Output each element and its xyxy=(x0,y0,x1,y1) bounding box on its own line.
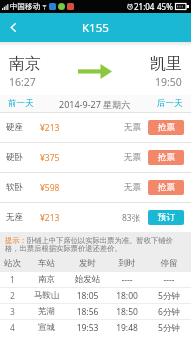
staticText: ¥375 xyxy=(40,152,60,164)
staticText: 1 xyxy=(0,274,25,286)
staticText: ---- xyxy=(147,274,191,286)
staticText: 芜湖 xyxy=(25,306,68,317)
staticText: 凯里 xyxy=(150,54,182,74)
staticText: 到时 xyxy=(107,258,147,269)
staticText: 抢票 xyxy=(158,182,175,193)
staticText: 3 xyxy=(0,306,25,318)
staticText: 车站 xyxy=(25,258,68,269)
staticText: 停留 xyxy=(147,258,191,269)
staticText: ¥598 xyxy=(40,182,60,194)
staticText: 无票 xyxy=(124,152,141,163)
staticText: 16:27 xyxy=(9,75,36,89)
button[interactable]: 无座 xyxy=(0,203,191,232)
staticText: 宣城 xyxy=(25,322,68,333)
button[interactable]: 3 xyxy=(0,304,191,319)
staticText: 后一天 xyxy=(157,98,183,109)
button[interactable]: 4 xyxy=(0,320,191,335)
staticText: 无票 xyxy=(124,182,141,193)
button[interactable]: 抢票 xyxy=(148,180,184,195)
staticText: 21:04 xyxy=(134,1,155,12)
staticText: 19:48 xyxy=(107,322,147,334)
button[interactable]: 软卧 xyxy=(0,173,191,202)
staticText: 抢票 xyxy=(158,152,175,163)
staticText: 马鞍山 xyxy=(25,290,68,301)
staticText: 无座 xyxy=(6,212,40,223)
button[interactable]: 预订 xyxy=(148,210,184,225)
staticText: 18:05 xyxy=(68,290,107,302)
staticText: 始发站 xyxy=(68,274,107,285)
staticText: 2014-9-27 星期六 xyxy=(59,98,131,110)
staticText: 无票 xyxy=(124,122,141,133)
staticText: 18:50 xyxy=(107,306,147,318)
button[interactable]: 硬座 xyxy=(0,113,191,142)
staticText: 南京 xyxy=(25,274,68,285)
staticText: ---- xyxy=(107,274,147,286)
button[interactable]: 抢票 xyxy=(148,120,184,135)
button[interactable]: 硬卧 xyxy=(0,143,191,172)
staticText: 2 xyxy=(0,290,25,302)
staticText: 抢票 xyxy=(158,122,175,133)
staticText: 5分钟 xyxy=(147,290,191,302)
staticText: 硬卧 xyxy=(6,152,40,163)
staticText: ¥213 xyxy=(40,122,60,134)
staticText: 18:00 xyxy=(107,290,147,302)
staticText: 19:50 xyxy=(155,75,182,89)
button[interactable]: Back xyxy=(0,13,26,42)
staticText: 83张 xyxy=(122,212,141,224)
staticText: 18:56 xyxy=(68,306,107,318)
button[interactable]: 前一天 xyxy=(0,95,42,112)
button[interactable]: 后一天 xyxy=(149,95,191,112)
staticText: 4 xyxy=(0,322,25,334)
staticText: 站次 xyxy=(0,258,25,269)
staticText: 预订 xyxy=(158,212,175,223)
button[interactable]: 2 xyxy=(0,288,191,303)
staticText: ¥213 xyxy=(40,212,60,224)
staticText: 中国移动 xyxy=(10,2,40,11)
staticText: K155 xyxy=(82,20,109,36)
staticText: 提示：卧铺上中下席位以实际出票为准。暂收下铺价格，出票后根据实际票价退还差价。 xyxy=(5,236,185,253)
staticText: 前一天 xyxy=(8,98,34,109)
staticText: 5分钟 xyxy=(147,322,191,334)
staticText: 硬座 xyxy=(6,122,40,133)
staticText: 发时 xyxy=(68,258,107,269)
button[interactable]: 1 xyxy=(0,272,191,287)
button[interactable]: 抢票 xyxy=(148,150,184,165)
staticText: 19:53 xyxy=(68,322,107,334)
staticText: 45% xyxy=(157,1,173,12)
staticText: 6分钟 xyxy=(147,306,191,318)
staticText: 软卧 xyxy=(6,182,40,193)
staticText: 南京 xyxy=(9,54,41,74)
